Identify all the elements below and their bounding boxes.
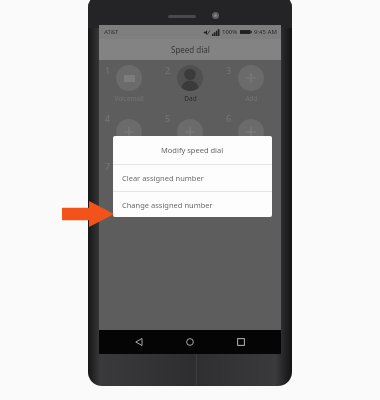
staticText: 6 bbox=[226, 112, 232, 124]
button[interactable]: 6 bbox=[220, 108, 281, 156]
staticText: 7 bbox=[105, 160, 111, 172]
button[interactable]: Home bbox=[179, 331, 201, 353]
button[interactable]: 3 bbox=[220, 60, 281, 108]
staticText: 1 bbox=[105, 64, 111, 76]
staticText: 8 bbox=[165, 160, 171, 172]
staticText: 5 bbox=[165, 112, 171, 124]
button[interactable]: 2 bbox=[159, 60, 220, 108]
staticText: Add bbox=[245, 94, 258, 103]
button[interactable]: 5 bbox=[159, 108, 220, 156]
button[interactable]: 7 bbox=[99, 156, 159, 204]
button[interactable]: 8 bbox=[159, 156, 220, 204]
staticText: 9:45 AM bbox=[254, 28, 277, 36]
button[interactable]: 1 bbox=[99, 60, 159, 108]
staticText: Modify speed dial bbox=[161, 145, 224, 155]
staticText: 100% bbox=[222, 28, 238, 36]
staticText: AT&T bbox=[104, 28, 119, 36]
button[interactable]: 4 bbox=[99, 108, 159, 156]
staticText: Dad bbox=[184, 94, 197, 103]
staticText: Change assigned number bbox=[122, 200, 213, 210]
staticText: Clear assigned number bbox=[122, 173, 204, 183]
button[interactable]: 9 bbox=[220, 156, 281, 204]
button[interactable]: Change assigned number bbox=[113, 192, 272, 217]
staticText: Voicemail bbox=[114, 94, 144, 103]
button[interactable]: Back bbox=[128, 331, 150, 353]
button[interactable]: Recent apps bbox=[230, 331, 252, 353]
staticText: 3 bbox=[226, 64, 232, 76]
button[interactable]: Clear assigned number bbox=[113, 165, 272, 191]
staticText: 2 bbox=[165, 64, 171, 76]
staticText: 9 bbox=[226, 160, 232, 172]
staticText: Speed dial bbox=[171, 44, 210, 55]
staticText: 4 bbox=[105, 112, 111, 124]
